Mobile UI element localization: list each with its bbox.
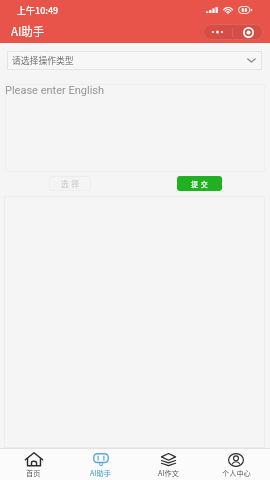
button[interactable]: 请选择操作类型 [7,51,262,70]
staticText: AI助手 [90,468,111,478]
button[interactable]: 提 交 [177,176,222,191]
staticText: 个人中心 [222,468,251,478]
button[interactable]: Please enter English [5,84,265,172]
button[interactable]: 个人中心 [202,448,270,480]
staticText: AI助手 [11,23,45,40]
staticText: Please enter English [5,84,105,97]
button[interactable]: 选 择 [49,176,91,191]
button[interactable]: 首页 [0,448,67,480]
button[interactable]: Close [233,24,263,40]
button[interactable]: AI助手 [67,448,134,480]
staticText: 上午10:49 [17,4,59,17]
staticText: AI作文 [158,468,179,478]
staticText: 首页 [26,468,41,478]
staticText: 提 交 [191,179,209,189]
button[interactable]: AI作文 [134,448,202,480]
button[interactable]: More options [203,24,232,40]
staticText: 请选择操作类型 [12,54,74,67]
staticText: 选 择 [61,178,80,189]
